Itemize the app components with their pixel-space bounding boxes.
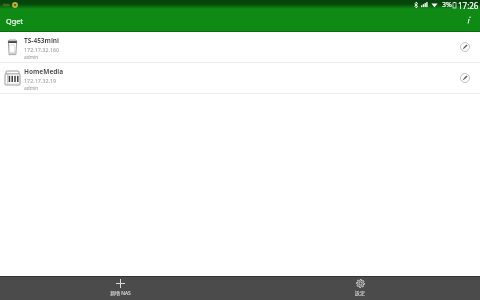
staticText: Qget [6, 16, 23, 26]
staticText: HomeMedia [24, 67, 64, 76]
button[interactable]: 新增 NAS [0, 277, 240, 300]
staticText: admin [24, 54, 39, 61]
button[interactable]: Edit [449, 63, 480, 93]
button[interactable]: HomeMedia [0, 63, 480, 93]
staticText: 3% [442, 0, 452, 9]
button[interactable]: 設定 [240, 277, 480, 300]
staticText: 新增 NAS [110, 290, 131, 297]
button[interactable]: TS-453mini [0, 32, 480, 62]
staticText: TS-453mini [24, 36, 60, 45]
button[interactable]: Info [456, 8, 480, 32]
staticText: 17:26 [458, 0, 479, 9]
staticText: 172.17.32.19 [24, 77, 57, 84]
staticText: 設定 [355, 290, 365, 296]
staticText: 172.17.32.160 [24, 46, 60, 53]
button[interactable]: Edit [449, 32, 480, 62]
staticText: admin [24, 85, 39, 92]
